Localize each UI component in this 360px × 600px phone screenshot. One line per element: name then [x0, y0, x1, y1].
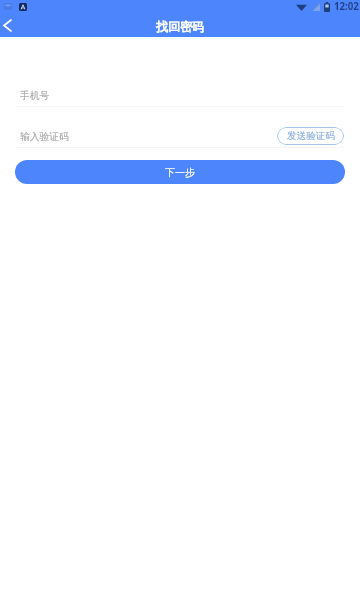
button[interactable]: 发送验证码 — [277, 127, 344, 145]
button[interactable]: 输入验证码 — [0, 125, 360, 148]
staticText: 手机号 — [20, 90, 50, 102]
staticText: 发送验证码 — [287, 130, 335, 142]
staticText: 12:02 — [334, 0, 359, 13]
button[interactable]: Back — [0, 14, 21, 37]
staticText: 找回密码 — [156, 19, 204, 34]
staticText: 下一步 — [165, 166, 195, 179]
staticText: 输入验证码 — [20, 131, 69, 143]
button[interactable]: 下一步 — [15, 160, 345, 184]
button[interactable]: 手机号 — [0, 84, 360, 107]
